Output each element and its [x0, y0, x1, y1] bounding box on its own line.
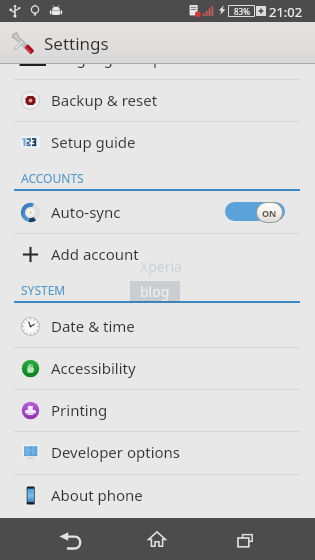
- staticText: Language & input: [51, 48, 177, 68]
- button[interactable]: Date & time: [0, 305, 315, 347]
- button[interactable]: Setup guide: [0, 121, 315, 163]
- staticText: ACCOUNTS: [21, 170, 84, 186]
- button[interactable]: Backup & reset: [0, 79, 315, 121]
- button[interactable]: Back: [25, 518, 115, 560]
- staticText: 83%: [234, 6, 250, 16]
- staticText: Developer options: [51, 442, 181, 462]
- button[interactable]: Home: [112, 518, 202, 560]
- staticText: ON: [262, 207, 277, 219]
- button[interactable]: Settings: [0, 22, 315, 64]
- staticText: SYSTEM: [21, 282, 66, 298]
- button[interactable]: Recent apps: [200, 518, 290, 560]
- button[interactable]: Accessibility: [0, 347, 315, 389]
- staticText: Settings: [44, 32, 109, 55]
- staticText: Backup & reset: [51, 90, 158, 110]
- staticText: blog: [140, 282, 170, 301]
- staticText: Date & time: [51, 316, 135, 336]
- staticText: 21:02: [269, 3, 303, 21]
- staticText: Xperia: [140, 257, 182, 276]
- staticText: Add account: [51, 244, 139, 264]
- staticText: Printing: [51, 400, 108, 420]
- staticText: About phone: [51, 485, 143, 505]
- button[interactable]: Printing: [0, 389, 315, 431]
- staticText: Setup guide: [51, 132, 136, 152]
- button[interactable]: Add account: [0, 233, 315, 275]
- staticText: Auto-sync: [51, 202, 121, 222]
- button[interactable]: Auto-sync: [0, 191, 315, 233]
- button[interactable]: Language & input: [0, 37, 315, 79]
- button[interactable]: Developer options: [0, 431, 315, 473]
- button[interactable]: ON: [225, 201, 285, 223]
- button[interactable]: About phone: [0, 474, 315, 516]
- staticText: Accessibility: [51, 358, 136, 378]
